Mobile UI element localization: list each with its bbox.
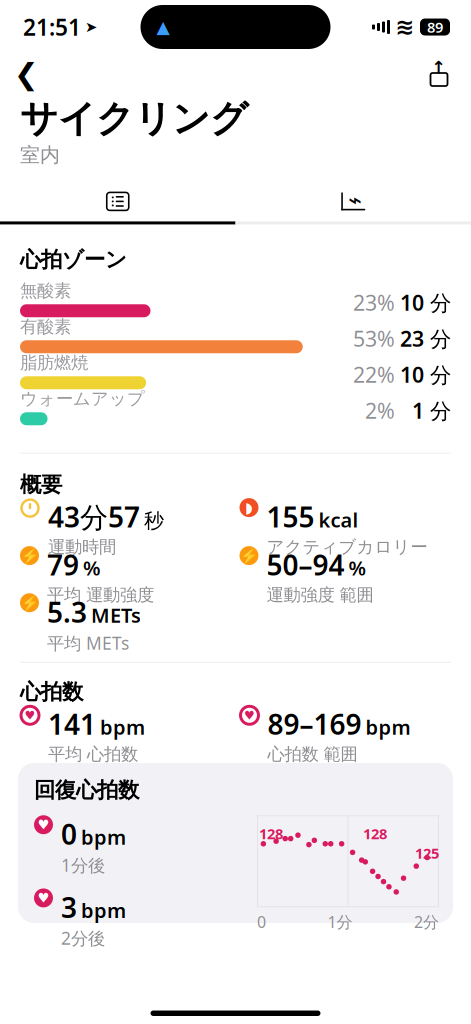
staticText: 心拍数 範囲 [267,743,357,765]
staticText: 3 [61,888,77,926]
staticText: 125 [415,843,439,863]
staticText: bpm [365,714,410,740]
staticText: 2分後 [61,927,105,950]
staticText: 脂肪燃焼 [20,352,88,373]
button[interactable]: 詳細 [0,181,235,221]
staticText: ⌁ [348,187,362,213]
staticText: ⚡ [20,594,38,611]
staticText: 10 分 [400,360,451,389]
staticText: bpm [81,824,126,850]
staticText: 2分 [414,911,439,932]
staticText: 1分後 [61,853,105,876]
staticText: ❮ [14,57,39,91]
staticText: 有酸素 [20,316,71,337]
staticText: 53% [353,324,395,353]
staticText: ▲ [156,17,169,37]
staticText: 平均 心拍数 [48,743,138,765]
staticText: ウォームアップ [20,388,145,409]
staticText: 79 [47,546,79,583]
staticText: 運動時間 [48,536,116,558]
staticText: ⚡ [240,547,258,564]
button[interactable]: 共有 [417,52,471,96]
staticText: 128 [363,824,387,843]
staticText: 1 分 [412,396,451,425]
staticText: ◗ [245,499,253,516]
staticText: 概要 [20,472,62,498]
staticText: 回復心拍数 [34,777,139,803]
staticText: % [83,554,101,581]
staticText: 0 [257,911,266,932]
staticText: 平均 METs [47,631,129,654]
staticText: ♥ [244,708,255,722]
staticText: 運動強度 範囲 [266,584,373,606]
staticText: METs [91,602,141,628]
staticText: 心拍数 [20,679,83,705]
staticText: 89–169 [267,705,361,742]
staticText: 21:51 [23,12,81,42]
staticText: 141 [48,705,96,742]
staticText: 2% [365,396,395,425]
staticText: 無酸素 [20,280,71,301]
staticText: 43分57 [48,498,140,535]
staticText: ⚡ [20,547,38,564]
staticText: 23% [353,288,395,317]
staticText: 10 分 [400,288,451,317]
staticText: bpm [100,714,145,740]
staticText: 50–94 [266,546,344,583]
button[interactable]: グラフ [235,181,471,221]
staticText: 心拍ゾーン [20,246,127,273]
staticText: 155 [266,498,314,535]
staticText: ♥ [37,890,49,905]
staticText: 室内 [20,143,60,167]
staticText: アクティブカロリー [266,536,427,558]
staticText: ♥ [24,708,35,722]
staticText: kcal [318,506,358,533]
staticText: bpm [81,897,126,923]
staticText: 22% [353,360,395,389]
staticText: ≋ [395,14,414,40]
staticText: 5.3 [47,593,87,630]
staticText: サイクリング [20,96,248,142]
button[interactable]: 戻る [0,52,58,96]
staticText: ↑ [431,58,446,77]
staticText: 0 [61,815,77,852]
staticText: ➤ [85,19,97,35]
staticText: 23 分 [400,324,451,353]
staticText: 秒 [144,509,164,533]
staticText: % [348,554,366,581]
staticText: 平均 運動強度 [47,584,154,606]
staticText: 128 [259,824,283,843]
staticText: 89 [427,17,443,37]
staticText: ♥ [37,817,49,832]
staticText: 1分 [327,911,352,932]
